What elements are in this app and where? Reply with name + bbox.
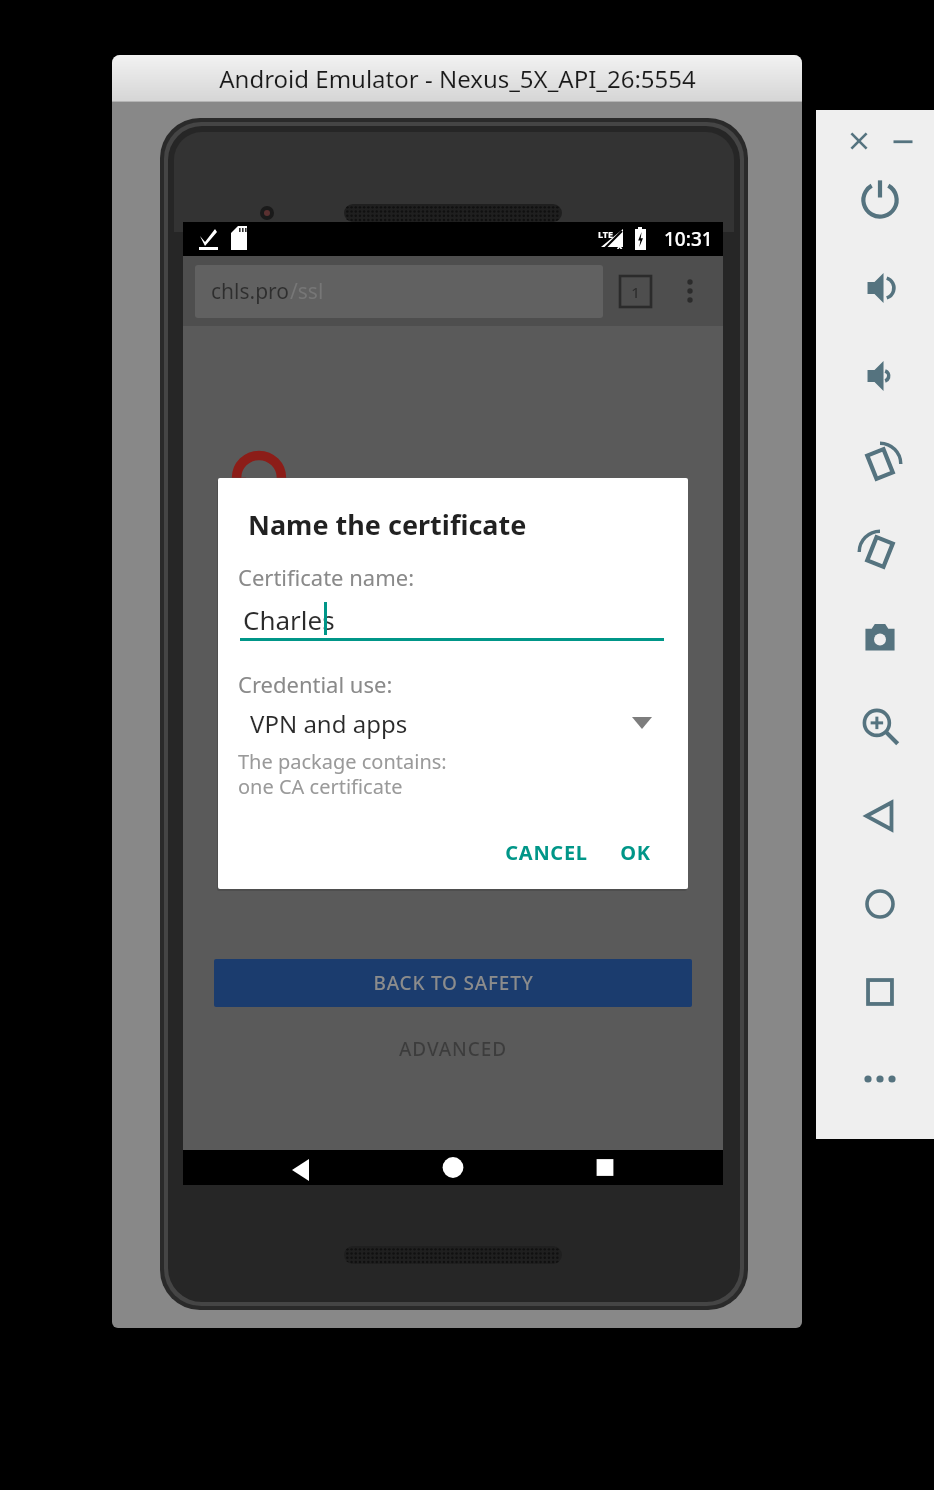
staticText: /ssl bbox=[290, 277, 324, 306]
staticText: Android Emulator - Nexus_5X_API_26:5554 bbox=[219, 62, 696, 95]
button[interactable]: Tab switcher bbox=[620, 276, 651, 307]
staticText: Credential use: bbox=[238, 669, 393, 699]
staticText: 10:31 bbox=[664, 226, 713, 252]
button[interactable]: Zoom bbox=[854, 700, 906, 752]
staticText: The package contains: bbox=[238, 748, 447, 775]
button[interactable]: Take screenshot bbox=[854, 612, 906, 664]
button[interactable]: More options bbox=[669, 270, 711, 312]
button[interactable]: OK bbox=[604, 831, 666, 873]
button[interactable]: Home bbox=[433, 1150, 473, 1185]
staticText: OK bbox=[620, 839, 651, 866]
staticText: chls.pro bbox=[211, 277, 290, 306]
button[interactable]: chls.pro bbox=[195, 265, 603, 318]
button[interactable]: BACK TO SAFETY bbox=[214, 959, 692, 1007]
button[interactable]: Back bbox=[281, 1150, 321, 1185]
staticText: one CA certificate bbox=[238, 773, 403, 800]
staticText: LTE bbox=[598, 228, 614, 240]
staticText: Name the certificate bbox=[248, 506, 527, 543]
staticText: Certificate name: bbox=[238, 562, 415, 592]
staticText: CANCEL bbox=[505, 839, 588, 866]
staticText: VPN and apps bbox=[250, 707, 408, 740]
button[interactable]: More bbox=[854, 1053, 906, 1105]
button[interactable]: Power bbox=[854, 174, 906, 226]
button[interactable]: VPN and apps bbox=[240, 702, 664, 744]
button[interactable]: Volume down bbox=[854, 350, 906, 402]
button[interactable]: Rotate left bbox=[854, 438, 906, 490]
button[interactable]: Home bbox=[854, 878, 906, 930]
staticText: Charles bbox=[243, 602, 335, 637]
button[interactable]: Recent apps bbox=[585, 1150, 625, 1185]
staticText: BACK TO SAFETY bbox=[373, 970, 534, 996]
staticText: x bbox=[617, 239, 623, 251]
button[interactable]: Overview bbox=[854, 966, 906, 1018]
button[interactable]: Close bbox=[840, 122, 878, 160]
button[interactable]: Back bbox=[854, 790, 906, 842]
button[interactable]: Minimise bbox=[884, 122, 922, 160]
button[interactable]: Rotate right bbox=[854, 526, 906, 578]
button[interactable]: CANCEL bbox=[492, 831, 600, 873]
button[interactable]: Volume up bbox=[854, 262, 906, 314]
staticText: 1 bbox=[631, 282, 640, 302]
staticText: ADVANCED bbox=[399, 1036, 507, 1062]
button[interactable]: ADVANCED bbox=[183, 1022, 723, 1076]
